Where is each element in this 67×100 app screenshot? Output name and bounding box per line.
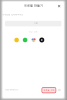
staticText: 이름 — [34, 22, 38, 24]
button[interactable]: Custom colour — [31, 38, 36, 42]
staticText: 닉네임을 입력해주세요 — [2, 13, 23, 16]
staticText: 프로필은 나중에 바꿀 수 있어요 — [5, 89, 18, 91]
button[interactable]: Selected colour — [39, 37, 44, 42]
staticText: 색상 선택 — [29, 31, 38, 33]
button[interactable]: Close — [57, 4, 61, 8]
staticText: 프로필 삭제 — [43, 89, 54, 91]
button[interactable]: Colour — [14, 38, 19, 42]
staticText: 프로필 만들기 — [24, 4, 43, 7]
button[interactable]: Colour — [23, 38, 27, 42]
button[interactable]: 프로필 삭제 — [42, 87, 56, 93]
button[interactable]: More — [58, 89, 61, 91]
